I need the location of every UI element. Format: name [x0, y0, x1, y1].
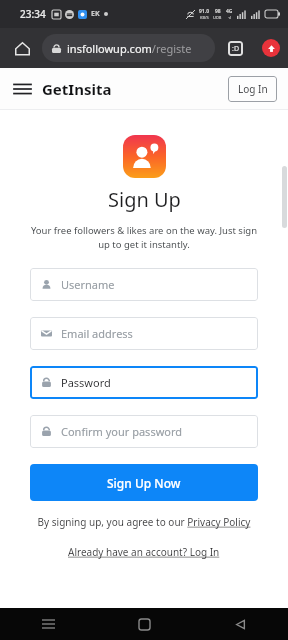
staticText: 91.0: [199, 8, 209, 15]
button[interactable]: Sign Up Now: [30, 464, 258, 501]
button[interactable]: Already have an account? Log In: [68, 545, 220, 559]
staticText: 98: [215, 8, 221, 15]
button[interactable]: Recents: [0, 608, 96, 640]
staticText: Log In: [238, 82, 268, 96]
button[interactable]: Confirm your password: [30, 415, 258, 448]
staticText: Password: [61, 375, 111, 390]
staticText: ·ıl: [228, 15, 232, 20]
staticText: Email address: [61, 326, 133, 341]
button[interactable]: Email address: [30, 317, 258, 350]
staticText: Already have an account? Log In: [68, 545, 220, 559]
staticText: GetInsita: [42, 79, 112, 99]
button[interactable]: Password: [30, 366, 258, 399]
staticText: KB/S: [200, 15, 209, 20]
staticText: 23:34: [20, 7, 46, 21]
button[interactable]: insfollowup.com/registe: [42, 34, 215, 62]
button[interactable]: Account: [262, 39, 280, 57]
button[interactable]: By signing up, you agree to our Privacy …: [30, 515, 258, 529]
button[interactable]: Home: [96, 608, 192, 640]
staticText: :D: [232, 44, 239, 54]
staticText: insfollowup.com/registe: [67, 41, 192, 56]
button[interactable]: Log In: [228, 76, 277, 102]
staticText: Sign Up Now: [107, 475, 181, 491]
button[interactable]: Menu: [6, 73, 38, 105]
button[interactable]: Username: [30, 268, 258, 301]
staticText: Your free followers & likes are on the w…: [30, 224, 258, 251]
staticText: EK: [91, 9, 100, 19]
button[interactable]: Tabs: [222, 35, 248, 61]
staticText: Username: [61, 277, 115, 292]
staticText: 4G: [226, 8, 233, 15]
staticText: Confirm your password: [61, 424, 183, 439]
staticText: UDB: [213, 15, 222, 20]
staticText: Sign Up: [108, 186, 181, 213]
button[interactable]: Home: [8, 34, 36, 62]
button[interactable]: Back: [192, 608, 288, 640]
